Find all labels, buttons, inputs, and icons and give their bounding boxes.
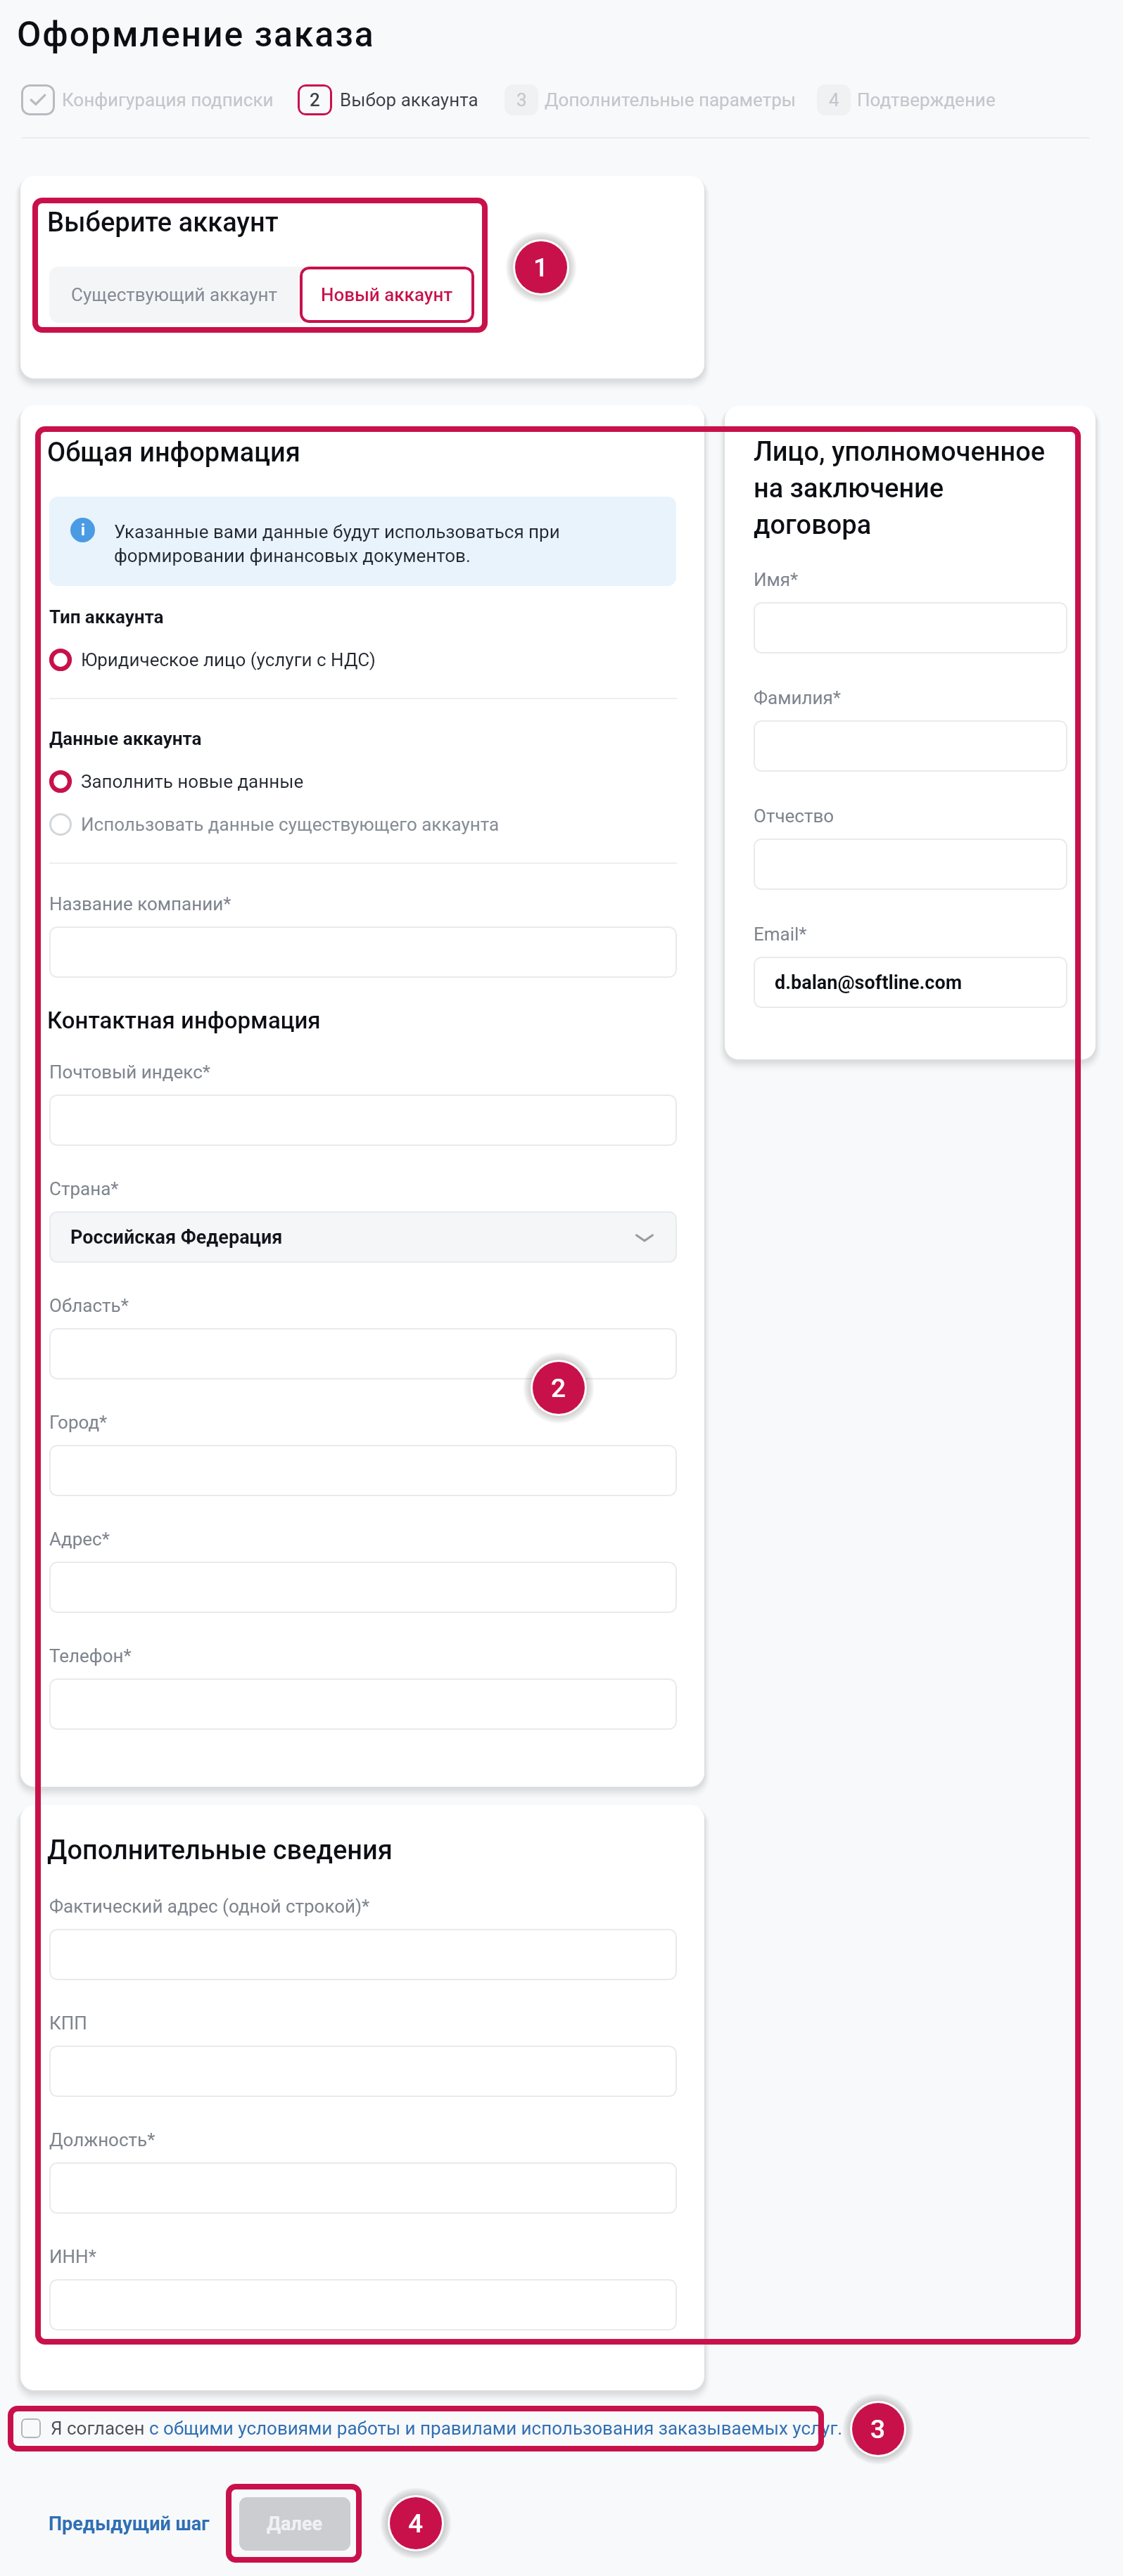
- button[interactable]: [49, 1328, 677, 1379]
- button[interactable]: 3: [505, 84, 796, 115]
- staticText: Далее: [267, 2513, 323, 2535]
- staticText: Дополнительные параметры: [545, 89, 796, 110]
- staticText: Город*: [49, 1412, 108, 1433]
- button[interactable]: Существующий аккаунт: [49, 267, 300, 323]
- staticText: Выберите аккаунт: [47, 207, 279, 238]
- button[interactable]: Российская Федерация: [49, 1211, 677, 1263]
- staticText: Подтверждение: [857, 89, 996, 110]
- staticText: Новый аккаунт: [321, 284, 453, 305]
- staticText: Страна*: [49, 1178, 119, 1199]
- button[interactable]: d.balan@softline.com: [754, 957, 1067, 1008]
- staticText: Я согласен: [51, 2418, 149, 2439]
- staticText: i: [81, 521, 85, 540]
- staticText: Телефон*: [49, 1645, 132, 1666]
- button[interactable]: [49, 1678, 677, 1730]
- staticText: Фамилия*: [754, 687, 842, 708]
- button[interactable]: Step marker 3: [852, 2403, 904, 2455]
- button[interactable]: Конфигурация подписки: [21, 84, 274, 115]
- staticText: Заполнить новые данные: [81, 771, 304, 792]
- staticText: Тип аккаунта: [49, 606, 164, 627]
- staticText: d.balan@softline.com: [775, 971, 963, 994]
- staticText: Общая информация: [47, 437, 300, 468]
- button[interactable]: Использовать данные существующего аккаун…: [49, 808, 502, 841]
- button[interactable]: [49, 926, 677, 978]
- button[interactable]: [49, 1445, 677, 1496]
- staticText: 4: [408, 2508, 424, 2539]
- button[interactable]: [49, 1562, 677, 1613]
- staticText: Российская Федерация: [70, 1226, 283, 1249]
- staticText: Имя*: [754, 569, 799, 590]
- staticText: Название компании*: [49, 893, 231, 914]
- staticText: Дополнительные сведения: [47, 1835, 393, 1866]
- button[interactable]: [754, 720, 1067, 772]
- staticText: Данные аккаунта: [49, 728, 202, 749]
- staticText: КПП: [49, 2013, 87, 2034]
- button[interactable]: [49, 2162, 677, 2214]
- staticText: Отчество: [754, 805, 835, 827]
- staticText: 2: [551, 1373, 566, 1403]
- button[interactable]: [754, 602, 1067, 653]
- staticText: Юридическое лицо (услуги с НДС): [81, 649, 376, 670]
- button[interactable]: Предыдущий шаг: [49, 2513, 210, 2535]
- staticText: 3: [870, 2414, 886, 2444]
- staticText: Оформление заказа: [17, 14, 375, 56]
- staticText: 3: [516, 89, 527, 110]
- staticText: Использовать данные существующего аккаун…: [81, 814, 500, 835]
- staticText: Выбор аккаунта: [340, 89, 478, 110]
- button[interactable]: Юридическое лицо (услуги с НДС): [49, 643, 378, 677]
- staticText: Контактная информация: [47, 1007, 321, 1034]
- button[interactable]: 2: [298, 84, 478, 115]
- staticText: Указанные вами данные будут использовать…: [114, 521, 560, 566]
- button[interactable]: [49, 1929, 677, 1980]
- staticText: Предыдущий шаг: [49, 2513, 210, 2535]
- staticText: ИНН*: [49, 2246, 96, 2267]
- staticText: Должность*: [49, 2129, 156, 2150]
- staticText: Лицо, уполномоченное на заключение догов…: [754, 436, 1046, 540]
- button[interactable]: 4: [817, 84, 996, 115]
- staticText: Почтовый индекс*: [49, 1061, 210, 1083]
- button[interactable]: [754, 839, 1067, 890]
- button[interactable]: Новый аккаунт: [300, 267, 474, 323]
- staticText: Email*: [754, 924, 807, 945]
- button[interactable]: Step marker 1: [515, 241, 567, 293]
- staticText: Область*: [49, 1295, 129, 1316]
- button[interactable]: Step marker 2: [533, 1362, 585, 1414]
- button[interactable]: [49, 2279, 677, 2330]
- button[interactable]: [49, 2046, 677, 2097]
- staticText: Фактический адрес (одной строкой)*: [49, 1896, 370, 1917]
- staticText: 4: [829, 89, 839, 110]
- staticText: Конфигурация подписки: [62, 89, 274, 110]
- staticText: с общими условиями работы и правилами ис…: [149, 2418, 843, 2439]
- staticText: 2: [310, 89, 320, 110]
- button[interactable]: Заполнить новые данные: [49, 765, 306, 798]
- button[interactable]: Далее: [239, 2497, 350, 2551]
- staticText: 1: [533, 253, 549, 283]
- staticText: Адрес*: [49, 1529, 110, 1550]
- button[interactable]: [49, 1095, 677, 1146]
- staticText: Существующий аккаунт: [71, 284, 278, 305]
- button[interactable]: Я согласен: [21, 2413, 843, 2444]
- button[interactable]: Step marker 4: [390, 2497, 442, 2549]
